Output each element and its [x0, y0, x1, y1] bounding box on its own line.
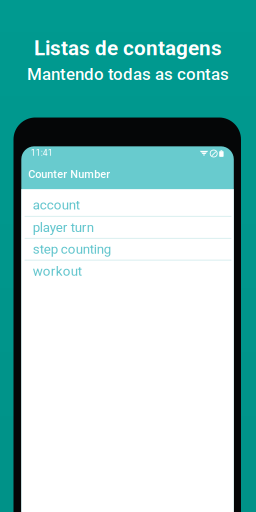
- button[interactable]: player turn: [21, 217, 234, 238]
- button[interactable]: step counting: [21, 239, 234, 260]
- staticText: Mantendo todas as contas: [27, 64, 229, 84]
- staticText: 11:41: [31, 148, 53, 158]
- staticText: step counting: [33, 241, 111, 257]
- staticText: workout: [33, 263, 82, 279]
- staticText: Counter Number: [28, 168, 110, 181]
- button[interactable]: account: [21, 189, 234, 216]
- button[interactable]: workout: [21, 261, 234, 282]
- staticText: Listas de contagens: [34, 36, 222, 60]
- staticText: account: [33, 197, 80, 213]
- staticText: player turn: [33, 219, 94, 235]
